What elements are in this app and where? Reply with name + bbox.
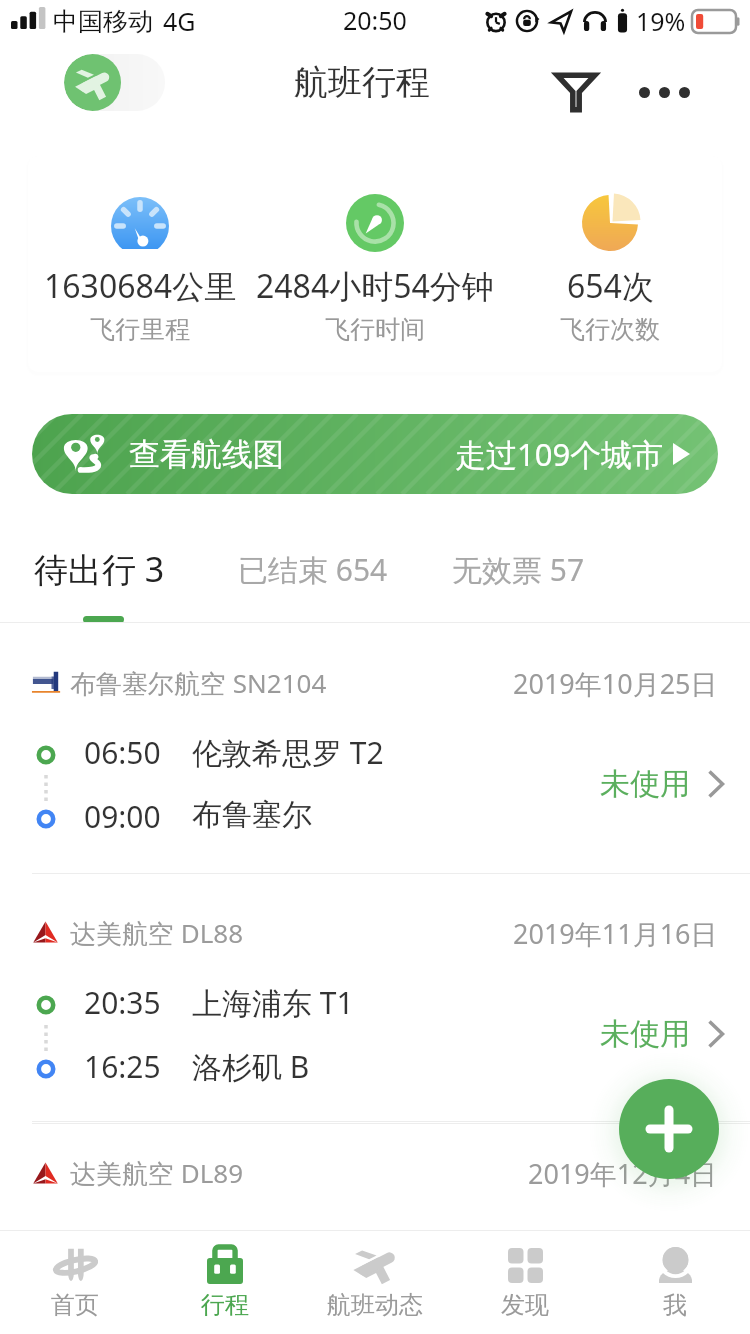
staticText: 达美航空 DL89 bbox=[70, 1155, 244, 1191]
button[interactable]: 查看航线图 bbox=[32, 414, 718, 494]
button[interactable]: More options bbox=[628, 56, 700, 128]
staticText: 飞行时间 bbox=[325, 314, 425, 345]
button[interactable]: 首页 bbox=[0, 1231, 150, 1334]
button[interactable]: 航班动态 bbox=[300, 1231, 450, 1334]
staticText: 2484小时54分钟 bbox=[256, 264, 494, 308]
staticText: 飞行次数 bbox=[560, 314, 660, 345]
button[interactable]: 布鲁塞尔航空 SN2104 bbox=[0, 622, 750, 874]
button[interactable]: 待出行 3 bbox=[20, 530, 179, 608]
staticText: 2019年11月16日 bbox=[513, 915, 718, 952]
staticText: 待出行 3 bbox=[34, 546, 165, 592]
staticText: 上海浦东 T1 bbox=[192, 982, 354, 1023]
button[interactable]: 已结束 654 bbox=[224, 530, 402, 608]
staticText: 行程 bbox=[201, 1290, 249, 1320]
staticText: 首页 bbox=[51, 1290, 99, 1320]
staticText: 已结束 654 bbox=[238, 549, 388, 590]
button[interactable]: 行程 bbox=[150, 1231, 300, 1334]
button[interactable]: Filter bbox=[540, 56, 612, 128]
button[interactable]: Flight mode toggle bbox=[64, 54, 165, 111]
staticText: 20:35 bbox=[84, 982, 161, 1023]
staticText: 未使用 bbox=[600, 765, 690, 803]
button[interactable]: 无效票 57 bbox=[438, 530, 599, 608]
staticText: 航班行程 bbox=[294, 61, 430, 104]
button[interactable]: 我 bbox=[600, 1231, 750, 1334]
staticText: 无效票 57 bbox=[452, 549, 585, 590]
staticText: 航班动态 bbox=[327, 1290, 423, 1320]
staticText: 飞行里程 bbox=[90, 314, 190, 345]
staticText: 我 bbox=[663, 1290, 687, 1320]
staticText: 未使用 bbox=[600, 1015, 690, 1053]
staticText: 1630684公里 bbox=[44, 264, 237, 308]
staticText: 06:50 bbox=[84, 732, 161, 773]
staticText: 布鲁塞尔航空 SN2104 bbox=[70, 665, 327, 701]
staticText: 查看航线图 bbox=[129, 435, 284, 474]
button[interactable]: 达美航空 DL88 bbox=[0, 872, 750, 1124]
staticText: 达美航空 DL88 bbox=[70, 915, 244, 951]
staticText: 伦敦希思罗 T2 bbox=[192, 732, 384, 773]
staticText: 2019年10月25日 bbox=[513, 665, 718, 702]
staticText: 发现 bbox=[501, 1290, 549, 1320]
staticText: 4G bbox=[163, 4, 196, 38]
staticText: 20:50 bbox=[343, 3, 407, 37]
button[interactable]: 达美航空 DL89 bbox=[0, 1122, 750, 1232]
staticText: 16:25 bbox=[84, 1046, 161, 1087]
button[interactable]: Add trip bbox=[619, 1079, 719, 1179]
staticText: 中国移动 bbox=[53, 6, 153, 37]
staticText: 洛杉矶 B bbox=[192, 1046, 310, 1087]
staticText: 654次 bbox=[567, 264, 654, 308]
staticText: 09:00 bbox=[84, 796, 161, 837]
staticText: 走过109个城市 bbox=[455, 433, 664, 475]
button[interactable]: 1630684公里 bbox=[28, 156, 722, 372]
button[interactable]: 发现 bbox=[450, 1231, 600, 1334]
staticText: 19% bbox=[636, 4, 686, 38]
staticText: 2019年12月4日 bbox=[528, 1155, 718, 1192]
staticText: 布鲁塞尔 bbox=[192, 796, 312, 834]
